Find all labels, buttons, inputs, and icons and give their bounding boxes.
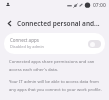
button[interactable]: Connect apps [4,33,105,54]
button[interactable]: Back [2,16,16,30]
staticText: Your IT admin will be able to access dat… [9,79,102,92]
staticText: 07:00 [93,2,106,9]
staticText: Disabled by admin [10,44,44,49]
staticText: Connected apps share permissions and can… [9,59,95,72]
staticText: Connected personal and... [17,19,100,28]
staticText: Connect apps [10,37,39,43]
